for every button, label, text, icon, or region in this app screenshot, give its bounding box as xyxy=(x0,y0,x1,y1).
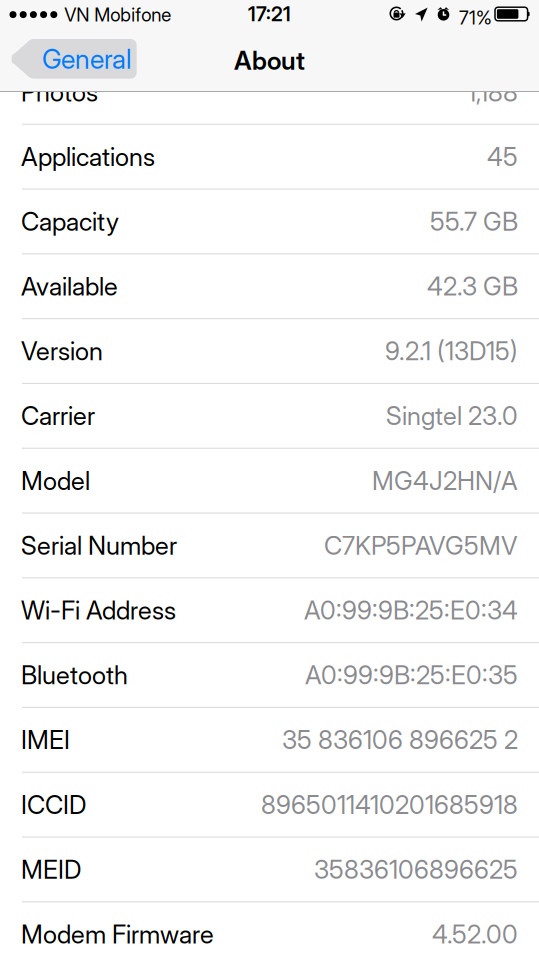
staticText: Version xyxy=(21,336,103,366)
staticText: Carrier xyxy=(21,401,95,431)
button[interactable]: MEID xyxy=(0,838,539,901)
button[interactable]: Wi-Fi Address xyxy=(0,578,539,642)
button[interactable]: Serial Number xyxy=(0,514,539,577)
staticText: 45 xyxy=(487,141,518,172)
staticText: VN Mobifone xyxy=(64,3,171,26)
button[interactable]: Version xyxy=(0,319,539,383)
staticText: 55.7 GB xyxy=(430,206,518,237)
button[interactable]: Carrier xyxy=(0,384,539,448)
staticText: IMEI xyxy=(21,725,70,755)
staticText: Photos xyxy=(21,77,98,108)
staticText: Model xyxy=(21,465,90,496)
staticText: A0:99:9B:25:E0:35 xyxy=(305,660,518,690)
staticText: A0:99:9B:25:E0:34 xyxy=(304,595,518,626)
staticText: MEID xyxy=(21,854,81,885)
staticText: About xyxy=(234,45,305,76)
staticText: MG4J2HN/A xyxy=(372,465,518,496)
staticText: Available xyxy=(21,271,118,302)
button[interactable]: ICCID xyxy=(0,773,539,837)
staticText: 42.3 GB xyxy=(427,271,518,302)
button[interactable]: Modem Firmware xyxy=(0,902,539,960)
staticText: 17:21 xyxy=(248,2,291,26)
staticText: General xyxy=(42,43,131,75)
staticText: Singtel 23.0 xyxy=(386,401,518,431)
button[interactable]: Available xyxy=(0,254,539,318)
staticText: C7KP5PAVG5MV xyxy=(324,530,518,561)
staticText: 9.2.1 (13D15) xyxy=(385,336,518,366)
staticText: Applications xyxy=(21,141,155,172)
button[interactable]: IMEI xyxy=(0,708,539,772)
staticText: Modem Firmware xyxy=(21,919,214,950)
staticText: 71% xyxy=(459,6,492,29)
staticText: Bluetooth xyxy=(21,660,128,690)
staticText: Serial Number xyxy=(21,530,177,561)
button[interactable]: Capacity xyxy=(0,190,539,253)
staticText: 35 836106 896625 2 xyxy=(282,725,518,755)
button[interactable]: Model xyxy=(0,449,539,513)
staticText: 8965011410201685918 xyxy=(261,789,518,820)
staticText: Capacity xyxy=(21,206,119,237)
button[interactable]: Bluetooth xyxy=(0,643,539,707)
staticText: 35836106896625 xyxy=(314,854,518,885)
staticText: 1,188 xyxy=(467,77,518,108)
button[interactable]: Applications xyxy=(0,125,539,189)
staticText: ICCID xyxy=(21,789,86,820)
button[interactable]: General xyxy=(0,38,145,79)
staticText: Wi-Fi Address xyxy=(21,595,176,626)
staticText: 4.52.00 xyxy=(432,919,518,950)
